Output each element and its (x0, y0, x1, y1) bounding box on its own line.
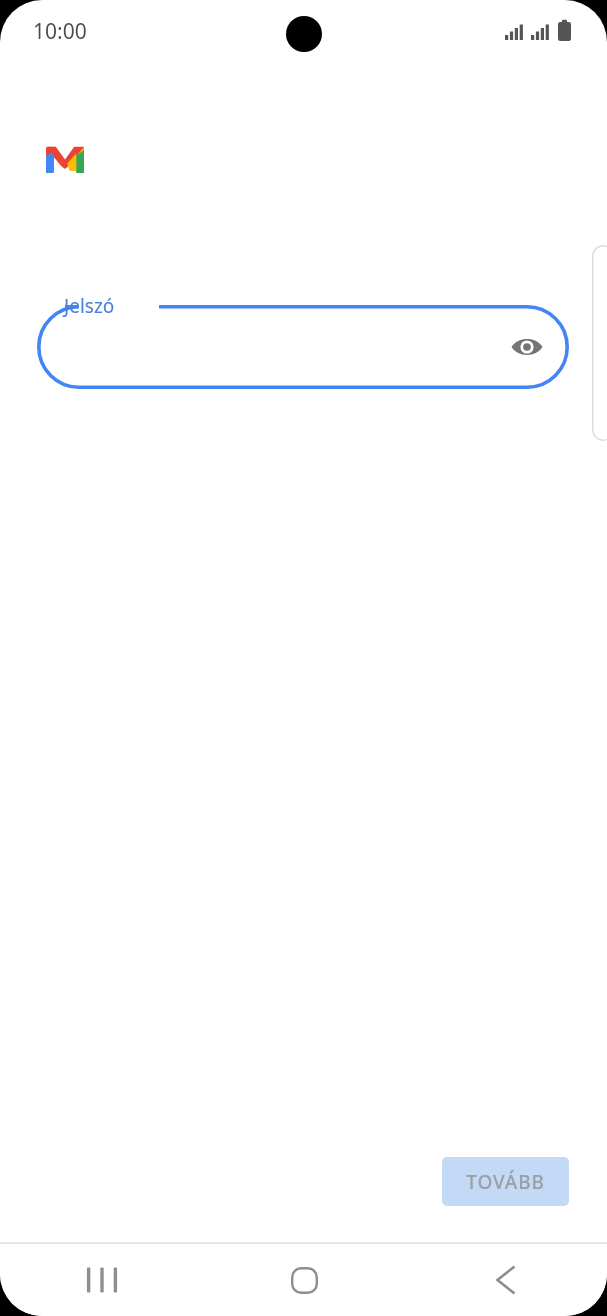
button[interactable]: Edge panel (592, 245, 607, 441)
staticText: Jelszó (64, 293, 115, 319)
button[interactable]: Jelszó megjelenítése (501, 321, 553, 373)
button[interactable]: Recents (0, 1244, 203, 1316)
staticText: TOVÁBB (466, 1169, 545, 1195)
button[interactable]: Jelszó megjelenítése (37, 305, 569, 389)
staticText: 10:00 (33, 17, 87, 46)
button[interactable]: TOVÁBB (442, 1157, 569, 1206)
button[interactable]: Back (405, 1244, 607, 1316)
button[interactable]: Home (203, 1244, 405, 1316)
